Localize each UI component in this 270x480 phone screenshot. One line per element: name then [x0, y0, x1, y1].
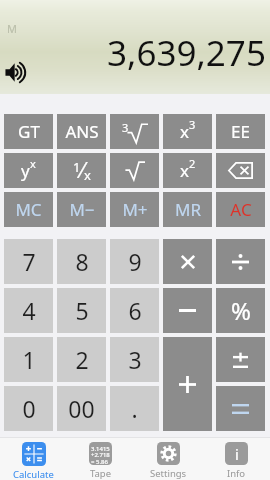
staticText: 3,639,275: [107, 29, 266, 77]
button[interactable]: Multiply: [163, 239, 212, 284]
button[interactable]: 3: [110, 337, 159, 382]
staticText: 5: [75, 295, 89, 326]
staticText: 1: [73, 158, 81, 176]
staticText: 7: [22, 246, 36, 277]
staticText: 6: [128, 295, 142, 326]
other: Backspace: [228, 162, 253, 179]
staticText: MC: [15, 198, 42, 221]
staticText: 3: [128, 344, 142, 375]
staticText: 3: [189, 117, 196, 132]
button[interactable]: x: [163, 153, 212, 188]
staticText: ANS: [65, 120, 99, 143]
button[interactable]: [110, 153, 159, 188]
staticText: 0: [22, 393, 36, 424]
staticText: Settings: [150, 467, 187, 480]
button[interactable]: 4: [4, 288, 53, 333]
button[interactable]: 8: [57, 239, 106, 284]
other: Multiply: [181, 255, 195, 269]
staticText: Calculate: [13, 468, 54, 480]
button[interactable]: MR: [163, 192, 212, 227]
staticText: M: [7, 21, 17, 36]
button[interactable]: 2: [57, 337, 106, 382]
button[interactable]: 1: [57, 153, 106, 188]
button[interactable]: AC: [216, 192, 265, 227]
button[interactable]: 3.1415: [67, 438, 134, 480]
button[interactable]: 00: [57, 386, 106, 431]
button[interactable]: 6: [110, 288, 159, 333]
button[interactable]: Settings: [134, 438, 202, 480]
button[interactable]: 5: [57, 288, 106, 333]
button[interactable]: y: [4, 153, 53, 188]
button[interactable]: x: [163, 114, 212, 149]
button[interactable]: M−: [57, 192, 106, 227]
staticText: x: [180, 159, 189, 182]
button[interactable]: Equals: [216, 386, 265, 431]
button[interactable]: 7: [4, 239, 53, 284]
staticText: Info: [227, 467, 246, 480]
button[interactable]: Calculate: [0, 438, 67, 480]
staticText: 8: [75, 246, 89, 277]
other: Cube root: [122, 120, 148, 144]
staticText: 2: [75, 344, 89, 375]
button[interactable]: Plus minus: [216, 337, 265, 382]
staticText: 1: [22, 344, 36, 375]
staticText: ⁄: [81, 156, 84, 185]
staticText: 2: [189, 156, 196, 171]
button[interactable]: %: [216, 288, 265, 333]
button[interactable]: Divide: [216, 239, 265, 284]
staticText: EE: [231, 120, 250, 143]
button[interactable]: 9: [110, 239, 159, 284]
other: Plus: [179, 376, 196, 393]
staticText: 3: [122, 120, 129, 135]
button[interactable]: GT: [4, 114, 53, 149]
button[interactable]: 0: [4, 386, 53, 431]
staticText: %: [231, 294, 251, 327]
button[interactable]: MC: [4, 192, 53, 227]
other: Divide: [232, 254, 249, 270]
staticText: MR: [175, 198, 201, 221]
staticText: M+: [122, 198, 148, 221]
other: Equals: [232, 404, 249, 414]
button[interactable]: M+: [110, 192, 159, 227]
button[interactable]: EE: [216, 114, 265, 149]
staticText: i: [235, 444, 239, 464]
staticText: y: [21, 159, 30, 182]
staticText: +2.718: [91, 451, 110, 459]
button[interactable]: i: [202, 438, 270, 480]
staticText: x: [30, 156, 36, 171]
button[interactable]: Cube root: [110, 114, 159, 149]
staticText: GT: [18, 120, 40, 143]
button[interactable]: Plus: [163, 337, 212, 431]
staticText: 4: [22, 295, 36, 326]
staticText: x: [180, 120, 189, 143]
staticText: .: [131, 393, 138, 424]
staticText: 3.1415: [91, 445, 110, 453]
staticText: 9: [128, 246, 142, 277]
staticText: M−: [69, 198, 95, 221]
staticText: AC: [230, 198, 252, 221]
staticText: x: [84, 166, 91, 184]
button[interactable]: Backspace: [216, 153, 265, 188]
button[interactable]: ANS: [57, 114, 106, 149]
other: Plus minus: [233, 352, 248, 368]
staticText: 00: [68, 393, 95, 424]
staticText: = 5.86: [91, 458, 108, 465]
staticText: Tape: [90, 467, 112, 480]
button[interactable]: Minus: [163, 288, 212, 333]
button[interactable]: 1: [4, 337, 53, 382]
button[interactable]: .: [110, 386, 159, 431]
